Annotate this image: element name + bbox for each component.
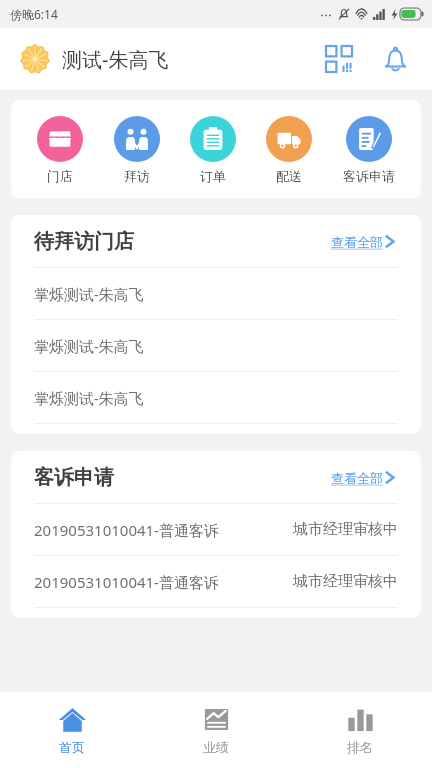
staticText: 测试-朱高飞 [62,46,169,73]
staticText: 配送 [276,168,302,184]
button[interactable]: Notifications [374,38,416,80]
staticText: 排名 [347,739,373,755]
button[interactable]: 门店 [33,114,87,186]
button[interactable]: 首页 [0,692,144,768]
staticText: 查看全部 [331,470,383,486]
staticText: 待拜访门店 [34,229,134,254]
staticText: 掌烁测试-朱高飞 [34,284,144,304]
staticText: 20190531010041-普通客诉 [34,572,219,592]
button[interactable]: 订单 [186,114,240,186]
button[interactable]: 20190531010041-普通客诉 [11,504,421,555]
button[interactable]: 客诉申请 [339,114,399,186]
button[interactable]: 掌烁测试-朱高飞 [11,320,421,371]
button[interactable]: 20190531010041-普通客诉 [11,556,421,607]
button[interactable]: Scan QR code [318,38,360,80]
staticText: 客诉申请 [34,465,114,490]
staticText: 城市经理审核中 [293,572,398,591]
staticText: 订单 [200,168,226,184]
staticText: 掌烁测试-朱高飞 [34,336,144,356]
button[interactable]: 查看全部 [329,229,398,254]
button[interactable]: 掌烁测试-朱高飞 [11,268,421,319]
staticText: 查看全部 [331,234,383,250]
staticText: 城市经理审核中 [293,520,398,539]
staticText: 拜访 [124,168,150,184]
button[interactable]: 排名 [288,692,432,768]
staticText: 门店 [47,168,73,184]
button[interactable]: 拜访 [110,114,164,186]
staticText: 客诉申请 [343,168,395,184]
button[interactable]: 查看全部 [329,465,398,490]
staticText: 20190531010041-普通客诉 [34,520,219,540]
button[interactable]: 掌烁测试-朱高飞 [11,372,421,423]
staticText: 傍晚6:14 [10,6,58,22]
button[interactable]: 配送 [262,114,316,186]
staticText: 掌烁测试-朱高飞 [34,388,144,408]
button[interactable]: 业绩 [144,692,288,768]
staticText: 业绩 [203,739,229,755]
staticText: 首页 [59,739,85,755]
